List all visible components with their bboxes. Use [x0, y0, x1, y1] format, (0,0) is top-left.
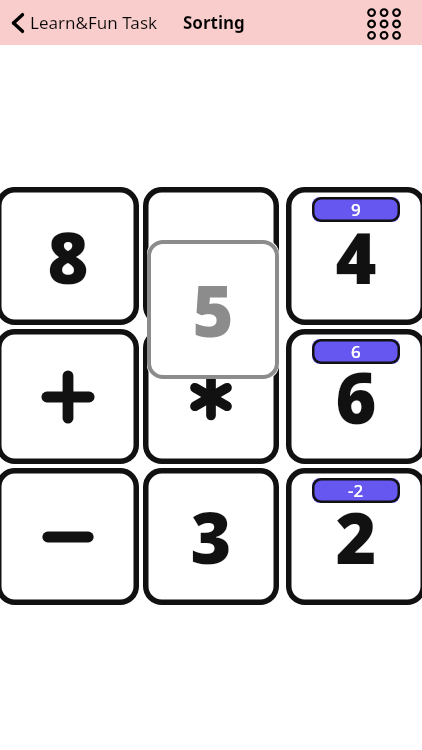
staticText: 8 [47, 209, 89, 304]
button[interactable]: 6 [286, 329, 422, 464]
button[interactable]: 6 [312, 339, 400, 364]
button[interactable]: 8 [0, 187, 139, 325]
staticText: Learn&Fun Task [30, 11, 158, 34]
button[interactable]: Menu [362, 1, 406, 45]
button[interactable]: 9 [312, 197, 400, 222]
staticText: 9 [351, 198, 361, 221]
button[interactable] [143, 329, 279, 464]
button[interactable]: 4 [286, 187, 422, 325]
staticText: -2 [348, 479, 364, 502]
staticText: 4 [335, 209, 377, 304]
staticText: 5 [192, 262, 234, 357]
button[interactable] [0, 468, 139, 605]
button[interactable]: 3 [143, 468, 279, 605]
staticText: 3 [190, 489, 232, 584]
staticText: 6 [351, 340, 361, 363]
staticText: 6 [335, 349, 377, 444]
button[interactable]: 5 [147, 240, 279, 379]
button[interactable]: 2 [286, 468, 422, 605]
button[interactable]: -2 [312, 478, 400, 503]
staticText: Sorting [183, 11, 245, 34]
button[interactable] [143, 187, 279, 325]
button[interactable]: Learn&Fun Task [10, 11, 158, 34]
button[interactable] [0, 329, 139, 464]
staticText: 2 [335, 489, 377, 584]
